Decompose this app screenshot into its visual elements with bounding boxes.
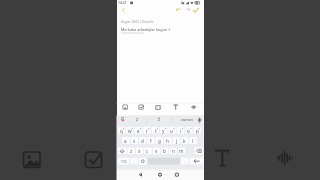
button[interactable] xyxy=(191,5,201,15)
button[interactable] xyxy=(148,158,180,165)
staticText: z xyxy=(136,116,139,122)
button[interactable]: z xyxy=(128,147,135,154)
button[interactable]: b xyxy=(161,147,168,154)
button[interactable]: p xyxy=(194,127,201,134)
staticText: . xyxy=(184,159,186,165)
button[interactable] xyxy=(169,170,185,180)
button[interactable] xyxy=(119,5,129,15)
button[interactable]: f xyxy=(147,137,154,144)
button[interactable]: l xyxy=(189,137,196,144)
button[interactable] xyxy=(153,103,162,111)
button[interactable] xyxy=(174,5,183,15)
button[interactable] xyxy=(133,170,149,180)
staticText: Merhaba arkadaşlar bugün :) xyxy=(121,27,170,32)
staticText: G xyxy=(121,116,125,123)
staticText: 14:21 xyxy=(118,0,127,5)
button[interactable]: , xyxy=(130,158,137,165)
button[interactable] xyxy=(136,103,145,111)
staticText: t xyxy=(155,128,157,134)
button[interactable] xyxy=(171,103,180,111)
button[interactable]: g xyxy=(156,137,163,144)
staticText: b xyxy=(163,148,166,154)
button[interactable]: u xyxy=(168,127,175,134)
staticText: u xyxy=(170,128,173,134)
button[interactable]: o xyxy=(185,127,192,134)
staticText: d xyxy=(141,138,144,144)
button[interactable]: r xyxy=(143,127,150,134)
button[interactable] xyxy=(152,170,168,180)
staticText: g xyxy=(158,138,161,144)
button[interactable]: v xyxy=(153,147,160,154)
button[interactable]: h xyxy=(164,137,171,144)
staticText: j xyxy=(176,138,178,144)
button[interactable]: ?123 xyxy=(118,158,129,165)
staticText: Bugün 14:02 | Düzenle xyxy=(121,20,154,24)
staticText: v xyxy=(155,148,158,154)
button[interactable] xyxy=(188,103,197,111)
button[interactable]: i xyxy=(177,127,184,134)
staticText: w xyxy=(128,128,132,134)
staticText: n xyxy=(172,148,175,154)
staticText: y xyxy=(162,128,165,134)
staticText: f xyxy=(150,138,152,144)
button[interactable] xyxy=(183,5,192,15)
button[interactable]: t xyxy=(152,127,159,134)
button[interactable]: c xyxy=(144,147,151,154)
staticText: s xyxy=(133,138,136,144)
button[interactable] xyxy=(120,103,129,111)
staticText: , xyxy=(133,159,135,165)
staticText: ?123 xyxy=(121,160,127,164)
button[interactable]: w xyxy=(126,127,133,134)
staticText: zaman xyxy=(181,117,193,122)
button[interactable]: a xyxy=(122,137,129,144)
staticText: ž xyxy=(158,116,161,122)
staticText: q xyxy=(120,128,123,134)
button[interactable]: q xyxy=(118,127,125,134)
staticText: p xyxy=(196,128,199,134)
staticText: x xyxy=(138,148,141,154)
staticText: h xyxy=(166,138,169,144)
button[interactable]: d xyxy=(139,137,146,144)
button[interactable]: k xyxy=(181,137,188,144)
staticText: l xyxy=(192,138,194,144)
button[interactable]: y xyxy=(160,127,167,134)
staticText: k xyxy=(183,138,186,144)
button[interactable]: . xyxy=(181,158,188,165)
staticText: i xyxy=(180,128,182,134)
staticText: c xyxy=(146,148,149,154)
staticText: m xyxy=(179,148,184,154)
staticText: a xyxy=(124,138,127,144)
button[interactable]: n xyxy=(170,147,177,154)
button[interactable]: x xyxy=(136,147,143,154)
button[interactable]: s xyxy=(131,137,138,144)
staticText: z xyxy=(130,148,133,154)
staticText: r xyxy=(146,128,148,134)
staticText: o xyxy=(187,128,190,134)
staticText: e xyxy=(137,128,140,134)
button[interactable]: j xyxy=(173,137,180,144)
button[interactable]: m xyxy=(178,147,185,154)
button[interactable]: e xyxy=(135,127,142,134)
